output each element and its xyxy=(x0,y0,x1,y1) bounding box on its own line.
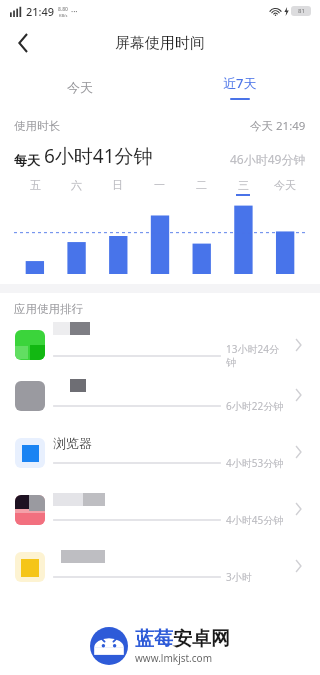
staticText: 二 xyxy=(196,178,207,192)
button[interactable]: 返回 xyxy=(6,26,40,60)
other: 详情 xyxy=(286,554,310,578)
button[interactable]: 4小时45分钟 xyxy=(0,491,320,548)
staticText: 五 xyxy=(30,178,41,192)
staticText: 13小时24分钟 xyxy=(226,342,286,369)
staticText: 使用时长 xyxy=(14,119,60,133)
staticText: 蓝莓 xyxy=(135,627,173,651)
button[interactable]: 浏览器 xyxy=(0,434,320,491)
staticText: 今天 xyxy=(67,79,93,95)
other: 详情 xyxy=(286,440,310,464)
staticText: 21:49 xyxy=(26,4,55,19)
staticText: 81 xyxy=(298,7,305,15)
staticText: 浏览器 xyxy=(53,435,92,451)
button[interactable]: 今天 xyxy=(0,64,160,110)
other: 详情 xyxy=(286,383,310,407)
staticText: 4小时53分钟 xyxy=(226,456,284,470)
staticText: 日 xyxy=(112,178,123,192)
staticText: 今天 xyxy=(274,178,296,192)
staticText: 一 xyxy=(154,178,165,192)
staticText: 近7天 xyxy=(223,74,257,92)
staticText: 六 xyxy=(71,178,82,192)
staticText: 8.80 xyxy=(58,6,68,13)
staticText: ··· xyxy=(71,6,78,17)
other: 详情 xyxy=(286,333,310,357)
button[interactable]: 近7天 xyxy=(160,64,320,110)
staticText: 6小时22分钟 xyxy=(226,399,284,413)
staticText: 三 xyxy=(238,178,249,192)
staticText: 应用使用排行 xyxy=(14,302,83,316)
button[interactable]: 13小时24分钟 xyxy=(0,320,320,377)
staticText: 每天 xyxy=(14,151,44,169)
other: 详情 xyxy=(286,497,310,521)
staticText: 6小时41分钟 xyxy=(44,143,153,169)
staticText: 屏幕使用时间 xyxy=(115,34,205,53)
staticText: 3小时 xyxy=(226,570,252,584)
staticText: 4小时45分钟 xyxy=(226,513,284,527)
button[interactable]: 6小时22分钟 xyxy=(0,377,320,434)
staticText: 安卓网 xyxy=(173,627,230,651)
staticText: KB/s xyxy=(59,13,68,18)
staticText: 今天 21:49 xyxy=(250,118,306,134)
staticText: 46小时49分钟 xyxy=(230,151,306,167)
button[interactable]: 3小时 xyxy=(0,548,320,605)
staticText: www.lmkjst.com xyxy=(135,651,212,665)
